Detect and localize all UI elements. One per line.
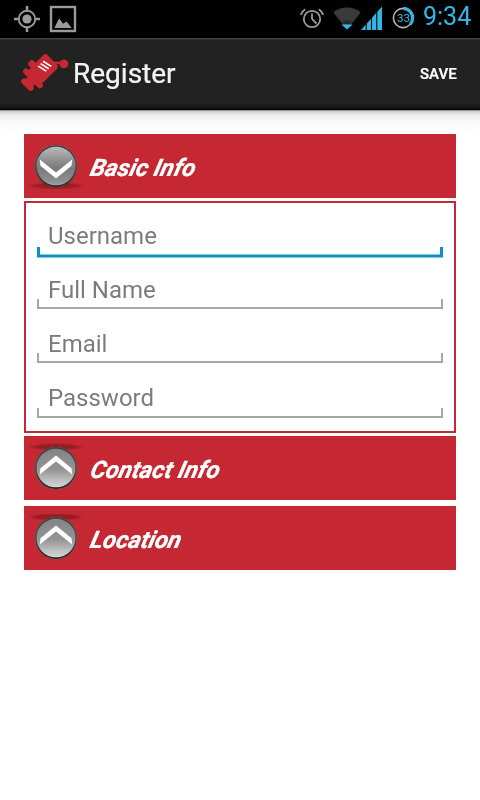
staticText: Username <box>48 222 157 250</box>
staticText: 33 <box>397 11 410 24</box>
button[interactable]: Contact Info <box>24 436 456 500</box>
staticText: Basic Info <box>89 154 194 182</box>
button[interactable]: Location <box>24 506 456 570</box>
staticText: Email <box>48 330 108 358</box>
button[interactable]: Password <box>37 380 443 433</box>
staticText: 9:34 <box>423 2 472 31</box>
staticText: Location <box>89 526 180 554</box>
button[interactable]: Username <box>37 218 443 272</box>
staticText: Contact Info <box>89 456 219 484</box>
other: App logo <box>12 48 64 100</box>
staticText: Password <box>48 384 155 412</box>
staticText: Full Name <box>48 276 156 304</box>
staticText: SAVE <box>420 65 457 83</box>
button[interactable]: Email <box>37 326 443 380</box>
button[interactable]: Basic Info <box>24 134 456 198</box>
button[interactable]: SAVE <box>398 38 480 110</box>
button[interactable]: Full Name <box>37 272 443 326</box>
staticText: Register <box>73 57 176 90</box>
